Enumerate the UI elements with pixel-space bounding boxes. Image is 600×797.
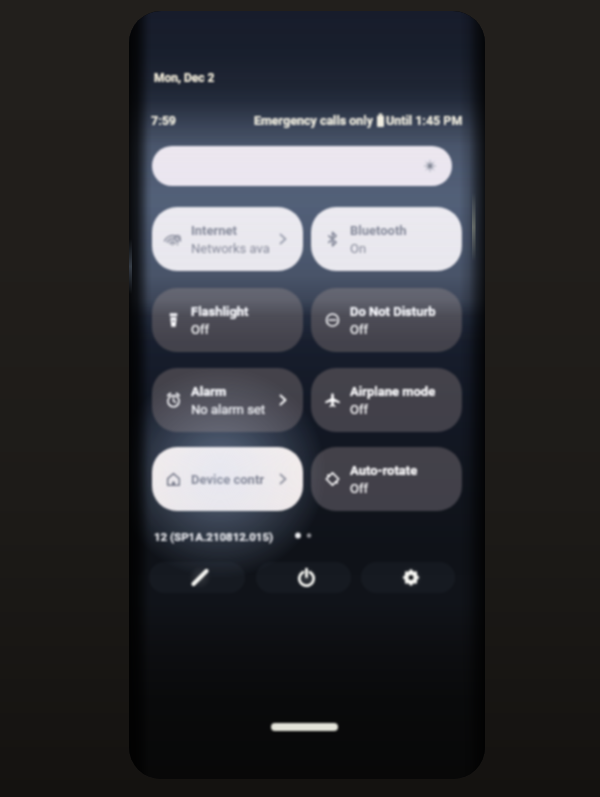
staticText: Off: [191, 322, 209, 337]
button[interactable]: Internet: [152, 207, 303, 271]
staticText: Internet: [191, 223, 237, 238]
button[interactable]: Do Not Disturb: [311, 288, 462, 352]
staticText: Emergency calls only: [254, 113, 373, 128]
button[interactable]: Device contr: [152, 447, 303, 511]
staticText: Do Not Disturb: [350, 304, 436, 319]
staticText: On: [350, 241, 367, 256]
staticText: 12 (SP1A.210812.015): [154, 530, 274, 543]
button[interactable]: Bluetooth: [311, 207, 462, 271]
staticText: Bluetooth: [350, 223, 407, 238]
staticText: Alarm: [191, 384, 227, 399]
staticText: Off: [350, 402, 368, 417]
staticText: Auto-rotate: [350, 463, 418, 478]
staticText: Mon, Dec 2: [154, 71, 215, 85]
button[interactable]: Alarm: [152, 368, 303, 432]
staticText: No alarm set: [191, 402, 266, 417]
staticText: Off: [350, 322, 368, 337]
button[interactable]: Brightness: [152, 146, 452, 186]
button[interactable]: Power: [256, 562, 351, 593]
button[interactable]: Home: [271, 723, 338, 731]
button[interactable]: Auto-rotate: [311, 447, 462, 511]
button[interactable]: Settings: [361, 562, 455, 593]
button[interactable]: Flashlight: [152, 288, 303, 352]
staticText: 7:59: [151, 113, 177, 128]
staticText: Flashlight: [191, 304, 249, 319]
button[interactable]: Edit: [149, 562, 245, 593]
staticText: Airplane mode: [350, 384, 436, 399]
staticText: Until 1:45 PM: [386, 113, 463, 128]
button[interactable]: Airplane mode: [311, 368, 462, 432]
staticText: Device contr: [191, 472, 265, 487]
staticText: Off: [350, 481, 368, 496]
staticText: Networks ava: [191, 241, 270, 256]
